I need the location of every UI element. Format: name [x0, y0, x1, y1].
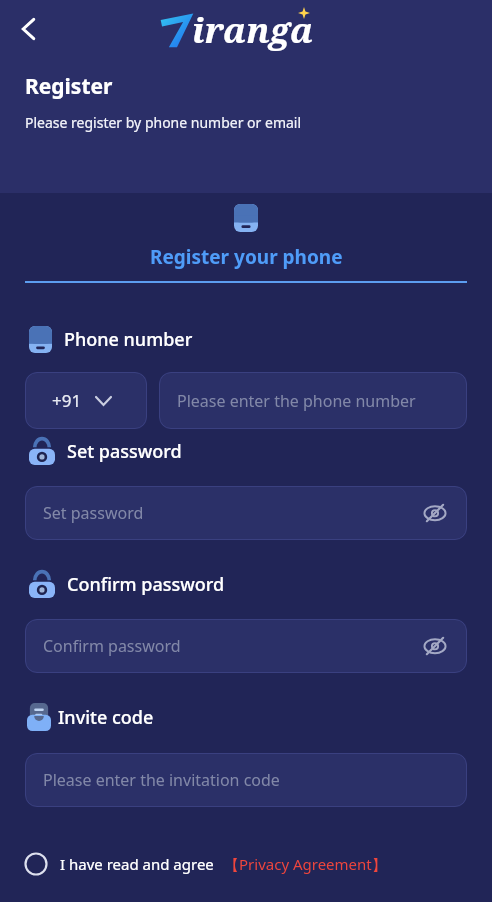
- staticText: Please enter the invitation code: [43, 769, 280, 791]
- staticText: Confirm password: [43, 635, 181, 657]
- staticText: Please register by phone number or email: [25, 113, 302, 132]
- staticText: iranga: [192, 6, 314, 52]
- staticText: Please enter the phone number: [177, 390, 416, 412]
- button[interactable]: Please enter the phone number: [159, 372, 467, 429]
- staticText: 【Privacy Agreement】: [224, 854, 387, 874]
- button[interactable]: +91: [25, 372, 147, 429]
- staticText: +91: [52, 389, 82, 412]
- button[interactable]: Confirm password: [25, 619, 467, 673]
- button[interactable]: Register your phone: [0, 244, 492, 270]
- staticText: Phone number: [64, 327, 193, 352]
- staticText: Confirm password: [67, 572, 225, 597]
- button[interactable]: I have read and agree: [24, 851, 492, 877]
- staticText: Register your phone: [150, 244, 343, 270]
- staticText: Set password: [67, 439, 182, 464]
- staticText: I have read and agree: [60, 854, 214, 874]
- staticText: Register: [25, 72, 113, 101]
- staticText: Set password: [43, 502, 144, 524]
- staticText: Invite code: [58, 705, 154, 730]
- button[interactable]: [21, 18, 36, 40]
- button[interactable]: Please enter the invitation code: [25, 753, 467, 807]
- button[interactable]: Set password: [25, 486, 467, 540]
